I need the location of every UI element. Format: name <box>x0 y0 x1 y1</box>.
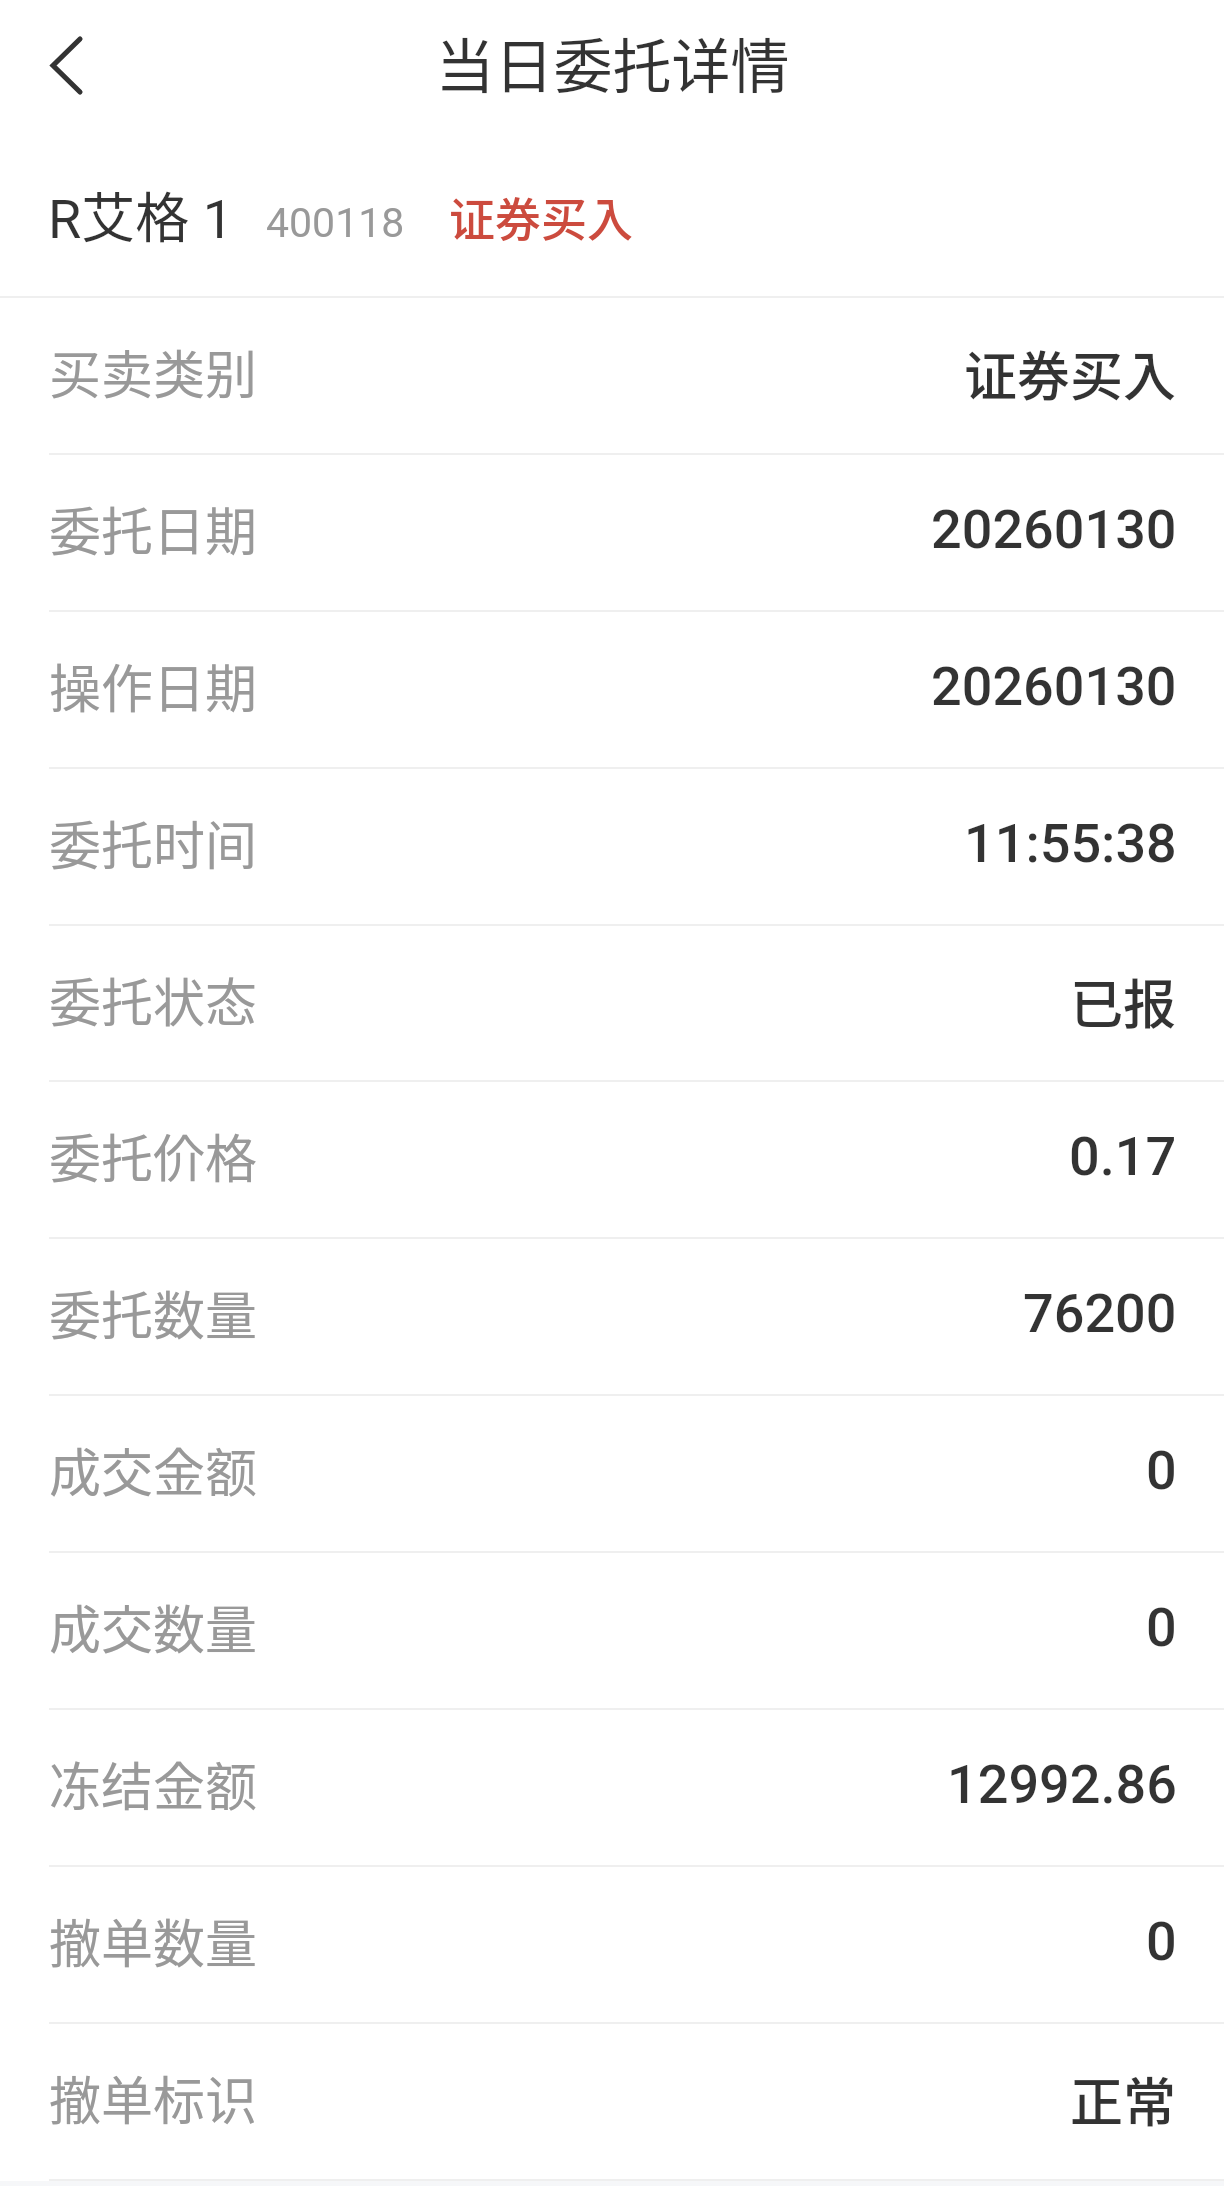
staticText: 20260130 <box>931 498 1177 561</box>
staticText: 冻结金额 <box>49 1746 258 1821</box>
button[interactable]: 买卖类别 <box>0 298 1224 455</box>
staticText: 20260130 <box>931 655 1177 718</box>
staticText: 当日委托详情 <box>435 20 790 105</box>
staticText: 76200 <box>1023 1282 1177 1345</box>
button[interactable]: 撤单数量 <box>0 1867 1224 2024</box>
button[interactable]: Back <box>0 2 126 128</box>
button[interactable]: 委托状态 <box>0 926 1224 1082</box>
staticText: R艾格 1 <box>48 175 234 253</box>
button[interactable]: 委托时间 <box>0 769 1224 926</box>
staticText: 证券买入 <box>964 334 1177 411</box>
staticText: 11:55:38 <box>964 812 1177 875</box>
button[interactable]: 成交金额 <box>0 1396 1224 1553</box>
staticText: 0 <box>1146 1910 1177 1973</box>
staticText: 0.17 <box>1069 1125 1177 1188</box>
staticText: 成交数量 <box>49 1589 258 1664</box>
staticText: 委托数量 <box>49 1275 258 1350</box>
staticText: 400118 <box>266 199 405 247</box>
button[interactable]: 委托数量 <box>0 1239 1224 1396</box>
staticText: 证券买入 <box>449 183 633 250</box>
button[interactable]: 成交数量 <box>0 1553 1224 1710</box>
staticText: 撤单数量 <box>49 1903 258 1978</box>
staticText: 12992.86 <box>947 1753 1177 1816</box>
staticText: 委托日期 <box>49 491 258 566</box>
staticText: 0 <box>1146 1439 1177 1502</box>
button[interactable]: 委托日期 <box>0 455 1224 612</box>
staticText: 买卖类别 <box>49 334 258 409</box>
staticText: 已报 <box>1070 962 1177 1039</box>
staticText: 0 <box>1146 1596 1177 1659</box>
staticText: 委托状态 <box>49 962 258 1037</box>
staticText: 委托价格 <box>49 1118 258 1193</box>
button[interactable]: 委托价格 <box>0 1082 1224 1239</box>
button[interactable]: 撤单标识 <box>0 2024 1224 2181</box>
staticText: 成交金额 <box>49 1432 258 1507</box>
button[interactable]: 冻结金额 <box>0 1710 1224 1867</box>
staticText: 操作日期 <box>49 648 258 723</box>
staticText: 委托时间 <box>49 805 258 880</box>
staticText: 撤单标识 <box>49 2060 258 2135</box>
staticText: 正常 <box>1070 2060 1177 2137</box>
button[interactable]: 操作日期 <box>0 612 1224 769</box>
